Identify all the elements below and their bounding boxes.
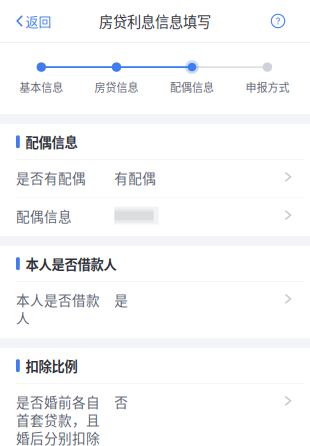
staticText: 房贷信息 <box>94 79 138 95</box>
staticText: 返回 <box>25 12 51 30</box>
staticText: 配偶信息 <box>26 132 78 151</box>
staticText: 基本信息 <box>19 79 63 95</box>
button[interactable]: 返回 <box>0 0 63 42</box>
staticText: 扣除比例 <box>26 356 78 375</box>
staticText: 申报方式 <box>245 79 289 95</box>
staticText: 否 <box>114 392 128 411</box>
staticText: 本人是否借款人 <box>26 254 117 273</box>
staticText: 是否婚前各自首套贷款，且婚后分别扣除 <box>16 392 100 446</box>
button[interactable]: 本人是否借款人 <box>0 282 310 338</box>
staticText: 房贷利息信息填写 <box>99 11 211 31</box>
staticText: 配偶信息 <box>170 79 214 95</box>
button[interactable]: 帮助说明 <box>258 0 310 42</box>
staticText: 配偶信息 <box>16 206 72 226</box>
staticText: 本人是否借款人 <box>16 290 100 327</box>
button[interactable]: 是否婚前各自首套贷款，且婚后分别扣除 <box>0 384 310 446</box>
staticText: 有配偶 <box>114 168 156 187</box>
button[interactable]: 是否有配偶 <box>0 160 310 198</box>
button[interactable]: 配偶信息 <box>0 198 310 236</box>
staticText: 是 <box>114 290 128 309</box>
staticText: ? <box>275 15 280 27</box>
staticText: 是否有配偶 <box>16 168 86 187</box>
